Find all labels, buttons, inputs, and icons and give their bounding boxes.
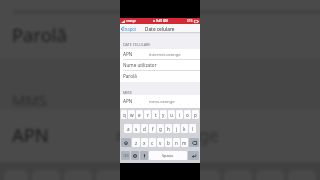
- staticText: g: [159, 126, 162, 132]
- staticText: MMS: [12, 90, 48, 110]
- staticText: Spațiu: [162, 153, 174, 158]
- staticText: h: [167, 126, 170, 132]
- staticText: p: [194, 112, 197, 118]
- staticText: b: [167, 140, 170, 146]
- button[interactable]: z: [132, 138, 140, 147]
- button[interactable]: d: [141, 124, 148, 133]
- button[interactable]: Parolă: [0, 14, 320, 58]
- staticText: Parolă: [123, 73, 137, 79]
- button[interactable]: v: [157, 138, 164, 147]
- staticText: Nume utilizator: [12, 0, 148, 2]
- button[interactable]: e: [136, 110, 143, 119]
- staticText: c: [151, 140, 154, 146]
- staticText: Parolă: [12, 22, 68, 46]
- button[interactable]: Spațiu: [149, 151, 187, 160]
- button[interactable]: t: [152, 110, 159, 119]
- staticText: APN: [123, 51, 133, 57]
- button[interactable]: Numbers: [121, 151, 130, 160]
- button[interactable]: m: [181, 138, 188, 147]
- button[interactable]: r: [144, 110, 151, 119]
- staticText: MMS: [123, 90, 132, 95]
- button[interactable]: k: [181, 124, 188, 133]
- button[interactable]: i: [176, 110, 183, 119]
- button[interactable]: u: [192, 170, 220, 180]
- button[interactable]: w: [128, 110, 135, 119]
- button[interactable]: f: [149, 124, 156, 133]
- button[interactable]: APN: [0, 114, 320, 158]
- button[interactable]: c: [149, 138, 156, 147]
- staticText: Înapoi: [123, 26, 137, 32]
- staticText: k: [183, 126, 186, 132]
- staticText: j: [176, 126, 178, 132]
- button[interactable]: APN: [120, 49, 200, 60]
- button[interactable]: x: [141, 138, 148, 147]
- staticText: w: [130, 112, 134, 118]
- staticText: DATE CELULARE: [123, 42, 151, 47]
- button[interactable]: q: [121, 110, 127, 119]
- staticText: o: [186, 112, 189, 118]
- button[interactable]: n: [173, 138, 180, 147]
- button[interactable]: s: [133, 124, 140, 133]
- button[interactable]: APN: [120, 96, 200, 107]
- button[interactable]: r: [96, 170, 124, 180]
- staticText: 51%: [187, 19, 193, 23]
- button[interactable]: h: [165, 124, 172, 133]
- button[interactable]: Nume utilizator: [120, 60, 200, 71]
- button[interactable]: Nume utilizator: [0, 0, 320, 14]
- staticText: l: [192, 126, 194, 132]
- staticText: Nume utilizator: [123, 62, 157, 68]
- button[interactable]: Înapoi: [121, 26, 137, 32]
- staticText: internet.orange: [149, 51, 181, 57]
- button[interactable]: l: [189, 124, 196, 133]
- button[interactable]: a: [124, 124, 132, 133]
- staticText: 9:41 AM: [156, 19, 169, 23]
- button[interactable]: p: [192, 110, 199, 119]
- button[interactable]: Return: [188, 151, 199, 160]
- staticText: x: [143, 140, 146, 146]
- button[interactable]: b: [165, 138, 172, 147]
- staticText: y: [162, 112, 165, 118]
- button[interactable]: Languages: [131, 151, 139, 160]
- staticText: m: [182, 140, 187, 146]
- button[interactable]: j: [173, 124, 180, 133]
- button[interactable]: y: [160, 110, 167, 119]
- button[interactable]: Parolă: [120, 71, 200, 82]
- staticText: r: [147, 112, 149, 118]
- button[interactable]: u: [168, 110, 175, 119]
- button[interactable]: Backspace: [189, 138, 199, 147]
- button[interactable]: Dictate: [140, 151, 148, 160]
- button[interactable]: Shift: [121, 138, 131, 147]
- staticText: q: [123, 112, 126, 118]
- staticText: orange: [126, 19, 136, 23]
- staticText: u: [170, 112, 173, 118]
- staticText: i: [179, 112, 181, 118]
- staticText: mms.orange: [116, 122, 220, 146]
- staticText: z: [135, 140, 138, 146]
- staticText: s: [135, 126, 138, 132]
- staticText: t: [155, 112, 157, 118]
- staticText: 123: [123, 154, 129, 158]
- button[interactable]: o: [184, 110, 191, 119]
- staticText: Date celulare: [145, 26, 175, 32]
- button[interactable]: g: [157, 124, 164, 133]
- staticText: mms.orange: [149, 98, 175, 104]
- staticText: APN: [12, 122, 52, 146]
- staticText: APN: [123, 98, 133, 104]
